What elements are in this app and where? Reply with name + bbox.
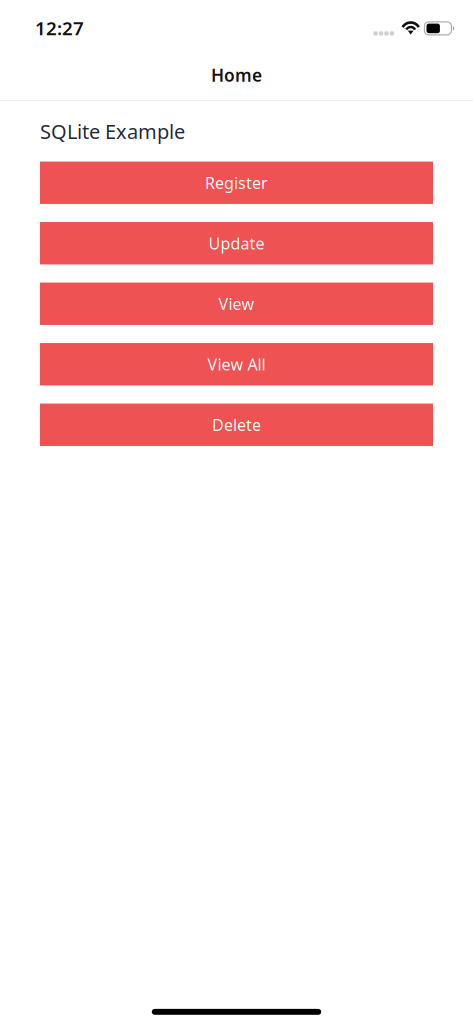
staticText: Register — [205, 172, 268, 193]
button[interactable]: Delete — [40, 404, 433, 446]
staticText: View All — [207, 354, 265, 375]
staticText: SQLite Example — [40, 118, 185, 145]
staticText: Update — [208, 233, 264, 254]
button[interactable]: View — [40, 283, 433, 325]
staticText: Home — [211, 63, 262, 86]
button[interactable]: View All — [40, 343, 433, 385]
staticText: View — [218, 293, 254, 314]
staticText: 12:27 — [35, 16, 84, 40]
button[interactable]: Register — [40, 162, 433, 204]
button[interactable]: Update — [40, 222, 433, 264]
staticText: Delete — [212, 414, 261, 435]
